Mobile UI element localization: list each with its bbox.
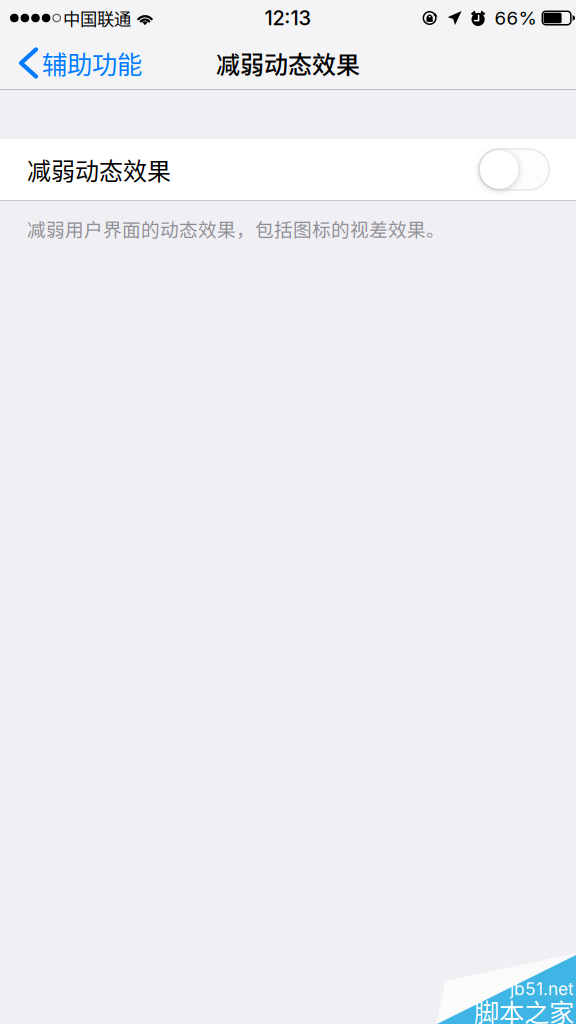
- staticText: 12:13: [264, 6, 311, 30]
- staticText: 辅助功能: [42, 45, 142, 81]
- staticText: 减弱动态效果: [216, 46, 360, 80]
- staticText: 66%: [495, 7, 537, 29]
- button[interactable]: 辅助功能: [0, 36, 154, 90]
- staticText: 减弱用户界面的动态效果，包括图标的视差效果。: [27, 215, 445, 242]
- staticText: 中国联通: [63, 5, 131, 31]
- staticText: 脚本之家: [474, 993, 574, 1024]
- staticText: jb51.net: [510, 978, 574, 999]
- button[interactable]: 减弱动态效果: [0, 138, 576, 201]
- staticText: 减弱动态效果: [27, 152, 171, 187]
